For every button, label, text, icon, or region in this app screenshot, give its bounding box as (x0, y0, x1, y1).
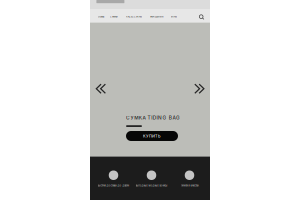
button[interactable]: ГАРАНТИЯ КАЧЕСТВА (170, 170, 208, 187)
button[interactable]: КУПИТЬ (126, 131, 178, 141)
button[interactable]: ВЫГОДНЫЕ МОДНЫЕ БОНУСЫ (132, 170, 170, 187)
staticText: АКСЕССУАРЫ (126, 15, 142, 18)
button[interactable]: Next product (194, 83, 204, 94)
button[interactable]: Previous product (96, 83, 106, 94)
staticText: ВЫГОДНЫЕ МОДНЫЕ БОНУСЫ (135, 184, 167, 187)
button[interactable]: БЫСТРАЯ ДОСТАВКА ДО ДВЕРИ (94, 170, 132, 187)
button[interactable]: Search (196, 9, 204, 22)
button[interactable]: СУМКИ (110, 9, 118, 22)
staticText: КУПИТЬ (143, 134, 161, 138)
staticText: ОБУВЬ (98, 15, 104, 18)
staticText: УКРАШЕНИЯ (150, 15, 163, 18)
staticText: СУМКИ (110, 15, 118, 18)
button[interactable]: ОБУВЬ (98, 9, 104, 22)
staticText: СУМКА TIDING BAG (126, 115, 180, 121)
button[interactable]: УКРАШЕНИЯ (150, 9, 163, 22)
button[interactable]: ИГРЫ (171, 9, 177, 22)
staticText: БЫСТРАЯ ДОСТАВКА ДО ДВЕРИ (97, 184, 129, 187)
staticText: ГАРАНТИЯ КАЧЕСТВА (180, 184, 198, 187)
button[interactable]: АКСЕССУАРЫ (126, 9, 142, 22)
staticText: ИГРЫ (171, 15, 177, 18)
